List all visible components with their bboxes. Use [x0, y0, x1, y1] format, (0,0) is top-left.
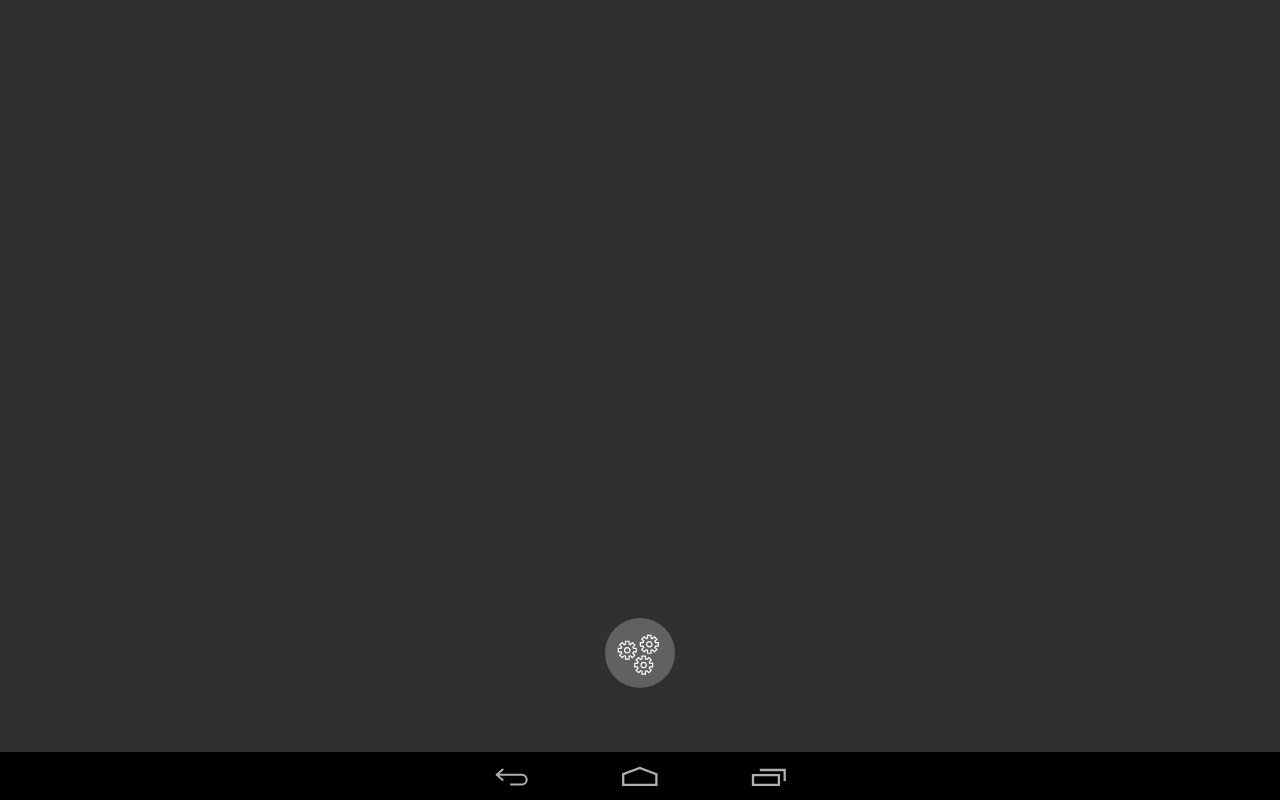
button[interactable]: Back — [448, 752, 576, 800]
button[interactable]: Home — [576, 752, 704, 800]
button[interactable]: Recent apps — [704, 752, 832, 800]
button[interactable]: Settings — [605, 618, 675, 688]
